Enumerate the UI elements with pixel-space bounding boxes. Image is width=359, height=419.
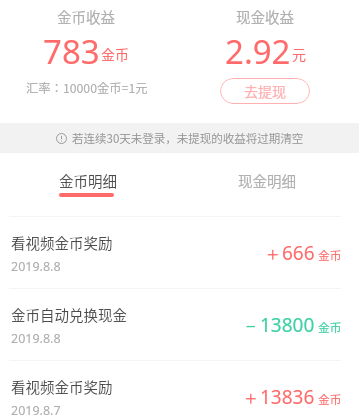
staticText: 金币 (318, 246, 342, 263)
staticText: 去提现 (244, 81, 286, 101)
button[interactable]: 看视频金币奖励 (0, 216, 359, 288)
staticText: 元 (292, 44, 306, 64)
staticText: 若连续30天未登录，未提现的收益将过期清空 (72, 130, 304, 147)
button[interactable]: 看视频金币奖励 (0, 360, 359, 419)
staticText: 2019.8.8 (11, 330, 61, 347)
staticText: 看视频金币奖励 (11, 232, 113, 253)
staticText: 2019.8.8 (11, 258, 61, 275)
staticText: 783 (43, 29, 100, 74)
staticText: 金币明细 (59, 170, 117, 191)
button[interactable]: 金币明细 (43, 162, 133, 204)
staticText: 金币 (101, 44, 129, 64)
staticText: 金币自动兑换现金 (11, 304, 127, 325)
staticText: 金币 (318, 390, 342, 407)
staticText: 现金收益 (236, 6, 294, 27)
button[interactable]: 现金明细 (222, 162, 312, 204)
staticText: 2.92 (225, 29, 291, 74)
staticText: －13800 (241, 312, 315, 338)
staticText: ＋666 (263, 240, 315, 266)
staticText: 现金明细 (238, 170, 296, 191)
staticText: 汇率：10000金币=1元 (26, 79, 148, 97)
staticText: 金币收益 (57, 6, 115, 27)
staticText: ＋13836 (241, 384, 315, 410)
staticText: 2019.8.7 (11, 402, 61, 419)
button[interactable]: 金币自动兑换现金 (0, 288, 359, 360)
staticText: 金币 (318, 318, 342, 335)
button[interactable]: 去提现 (220, 78, 310, 104)
staticText: 看视频金币奖励 (11, 376, 113, 397)
